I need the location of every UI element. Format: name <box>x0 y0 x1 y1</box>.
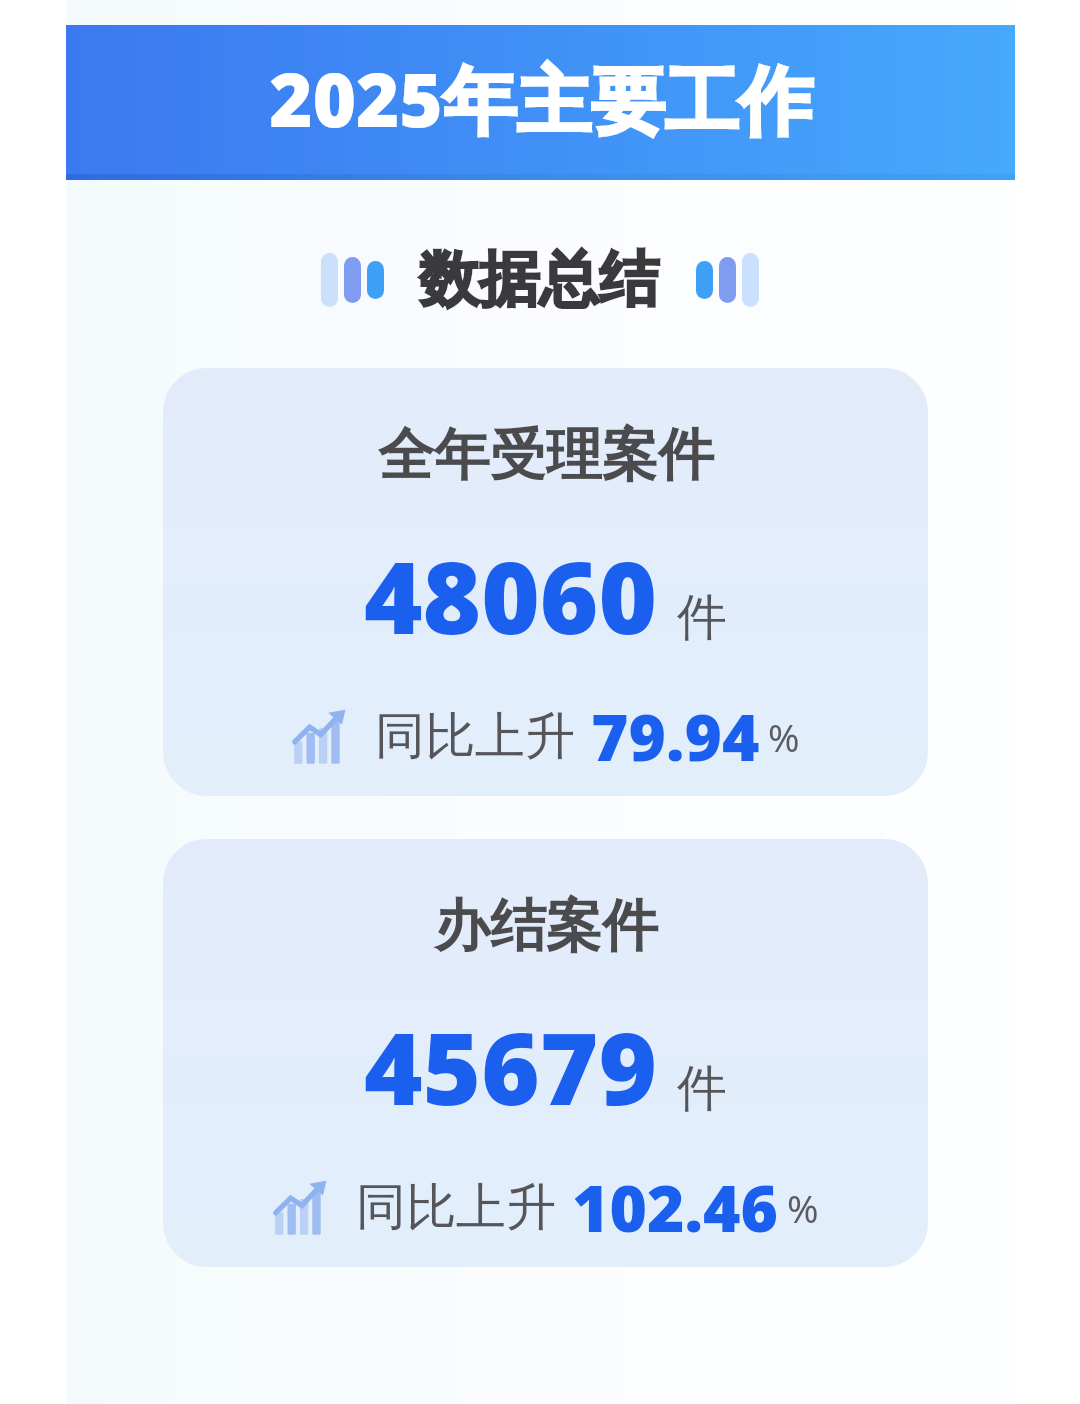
staticText: 45679 <box>364 998 657 1134</box>
staticText: 79.94 <box>591 693 760 780</box>
staticText: 102.46 <box>572 1164 779 1251</box>
staticText: 件 <box>677 1057 727 1120</box>
staticText: % <box>768 711 800 763</box>
button[interactable]: 数据总结 <box>0 242 1080 318</box>
button[interactable]: 全年受理案件 <box>163 368 928 796</box>
other: Growth chart <box>272 1177 334 1239</box>
staticText: 件 <box>677 586 727 649</box>
staticText: 2025年主要工作 <box>269 48 813 149</box>
staticText: 同比上升 <box>356 1176 556 1239</box>
staticText: 办结案件 <box>434 891 658 962</box>
staticText: 全年受理案件 <box>378 420 714 491</box>
other: Growth chart <box>291 706 353 768</box>
staticText: 同比上升 <box>375 705 575 768</box>
staticText: 48060 <box>364 527 657 663</box>
staticText: % <box>787 1182 819 1234</box>
button[interactable]: 办结案件 <box>163 839 928 1267</box>
staticText: 数据总结 <box>419 242 659 318</box>
button[interactable]: 2025年主要工作 <box>66 25 1015 180</box>
